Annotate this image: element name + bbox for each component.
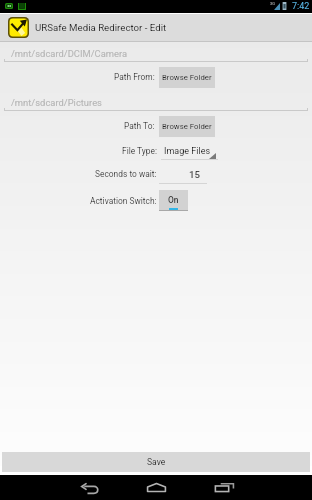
staticText: 7:42 <box>292 1 310 12</box>
button[interactable]: 15 <box>159 168 207 184</box>
staticText: 15 <box>189 169 201 180</box>
button[interactable]: Back <box>62 475 118 500</box>
button[interactable]: Browse Folder <box>159 67 215 88</box>
button[interactable]: Home <box>128 475 184 500</box>
button[interactable]: Image Files <box>161 144 218 160</box>
button[interactable]: Recent apps <box>196 475 252 500</box>
staticText: Activation Switch: <box>90 196 157 206</box>
staticText: Save <box>147 457 166 467</box>
button[interactable]: Browse Folder <box>159 116 215 137</box>
staticText: URSafe Media Redirector - Edit <box>35 22 167 33</box>
staticText: On <box>168 195 179 205</box>
staticText: /mnt/sdcard/Pictures <box>11 97 102 108</box>
button[interactable]: /mnt/sdcard/Pictures <box>0 97 312 111</box>
staticText: File Type: <box>122 146 157 156</box>
staticText: /mnt/sdcard/DCIM/Camera <box>11 48 128 59</box>
staticText: Browse Folder <box>162 122 212 131</box>
staticText: Path From: <box>114 72 155 82</box>
button[interactable]: Save <box>2 452 310 472</box>
staticText: Seconds to wait: <box>95 169 157 179</box>
staticText: Browse Folder <box>162 73 212 82</box>
staticText: Image Files <box>164 146 211 157</box>
button[interactable]: /mnt/sdcard/DCIM/Camera <box>0 48 312 62</box>
staticText: Path To: <box>124 121 155 131</box>
button[interactable]: On <box>159 190 188 211</box>
staticText: 3G <box>270 1 275 6</box>
